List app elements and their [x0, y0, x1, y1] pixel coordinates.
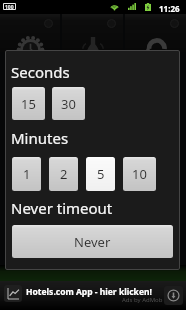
staticText: 11:26: [159, 3, 180, 14]
staticText: 15: [21, 95, 36, 113]
button[interactable]: Alarm clock: [0, 14, 60, 52]
staticText: Minutes: [11, 128, 69, 148]
button[interactable]: 2: [49, 157, 78, 191]
staticText: 2: [60, 165, 68, 183]
button[interactable]: Download: [164, 286, 183, 305]
button[interactable]: 15: [12, 87, 45, 120]
staticText: Hotels.com App - hier klicken!: [26, 286, 152, 298]
button[interactable]: 1: [12, 157, 41, 191]
button[interactable]: 5: [86, 157, 115, 191]
staticText: 5: [97, 165, 105, 183]
staticText: Ads by AdMob: [122, 296, 163, 304]
staticText: 30: [61, 95, 76, 113]
button[interactable]: Hotels.com App - hier klicken!: [0, 281, 186, 310]
button[interactable]: Flashlight: [62, 14, 123, 52]
staticText: Never: [74, 233, 111, 251]
staticText: 100: [5, 4, 14, 9]
button[interactable]: 30: [52, 87, 85, 120]
other: Notification: [3, 3, 16, 10]
staticText: 10: [132, 165, 147, 183]
staticText: 1: [23, 165, 31, 183]
button[interactable]: Rotate: [125, 14, 186, 52]
staticText: Seconds: [11, 62, 70, 82]
staticText: Never timeout: [11, 198, 113, 218]
button[interactable]: Never: [12, 225, 173, 258]
button[interactable]: 10: [123, 157, 156, 191]
